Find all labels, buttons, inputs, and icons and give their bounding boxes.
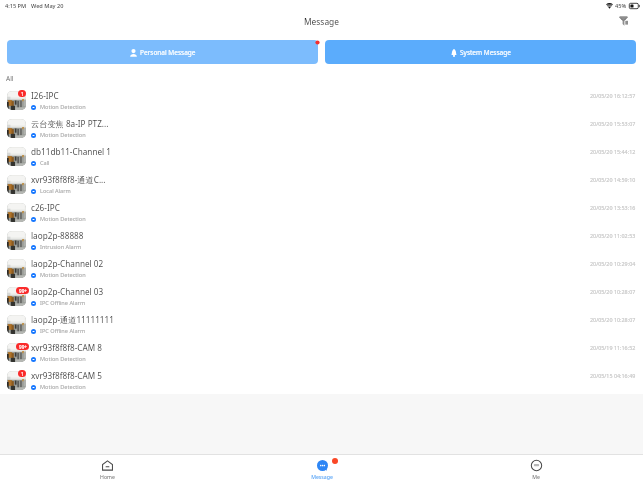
staticText: All: [6, 74, 14, 83]
staticText: Motion Detection: [40, 103, 86, 111]
button[interactable]: Home: [0, 455, 215, 482]
staticText: IPC Offline Alarm: [40, 299, 86, 307]
staticText: 20/05/20 13:53:16: [590, 204, 636, 211]
staticText: c26-IPC: [31, 202, 60, 213]
staticText: Wed May 20: [31, 2, 64, 10]
staticText: Me: [532, 473, 540, 480]
staticText: laop2p-Channel 02: [31, 258, 104, 269]
button[interactable]: Message: [215, 455, 429, 482]
staticText: Motion Detection: [40, 215, 86, 223]
staticText: 45%: [615, 2, 627, 10]
button[interactable]: laop2p-Channel 02: [0, 254, 643, 282]
staticText: laop2p-通道11111111: [31, 314, 114, 325]
staticText: 20/05/20 11:02:53: [590, 232, 636, 239]
staticText: Home: [100, 473, 115, 480]
button[interactable]: Personal Message: [7, 40, 318, 64]
button[interactable]: 1: [0, 86, 643, 114]
button[interactable]: c26-IPC: [0, 198, 643, 226]
staticText: System Message: [460, 48, 511, 57]
button[interactable]: 99+: [0, 282, 643, 310]
staticText: Motion Detection: [40, 383, 86, 391]
button[interactable]: Filter: [616, 14, 630, 28]
staticText: IPC Offline Alarm: [40, 327, 86, 335]
staticText: 20/05/20 10:28:07: [590, 316, 636, 323]
staticText: 20/05/20 16:12:57: [590, 92, 636, 99]
staticText: xvr93f8f8f8-CAM 8: [31, 342, 103, 353]
staticText: 20/05/15 04:16:49: [590, 372, 636, 379]
staticText: Motion Detection: [40, 131, 86, 139]
staticText: 20/05/20 10:29:04: [590, 260, 636, 267]
staticText: 99+: [19, 288, 27, 294]
staticText: 云台变焦 8a-IP PTZ...: [31, 118, 109, 129]
button[interactable]: 1: [0, 366, 643, 394]
button[interactable]: 99+: [0, 338, 643, 366]
staticText: 1: [21, 371, 24, 377]
staticText: laop2p-88888: [31, 230, 84, 241]
staticText: Message: [311, 473, 333, 480]
button[interactable]: 云台变焦 8a-IP PTZ...: [0, 114, 643, 142]
staticText: 20/05/20 15:53:07: [590, 120, 636, 127]
staticText: 20/05/20 14:59:10: [590, 176, 636, 183]
staticText: 4:15 PM: [5, 2, 27, 10]
staticText: 20/05/19 11:16:52: [590, 344, 636, 351]
button[interactable]: db11db11-Channel 1: [0, 142, 643, 170]
button[interactable]: laop2p-88888: [0, 226, 643, 254]
staticText: Call: [40, 159, 50, 167]
staticText: Message: [304, 16, 339, 27]
button[interactable]: xvr93f8f8f8-通道C...: [0, 170, 643, 198]
staticText: Motion Detection: [40, 271, 86, 279]
staticText: 20/05/20 10:28:07: [590, 288, 636, 295]
button[interactable]: laop2p-通道11111111: [0, 310, 643, 338]
staticText: db11db11-Channel 1: [31, 146, 112, 157]
staticText: xvr93f8f8f8-CAM 5: [31, 370, 103, 381]
button[interactable]: System Message: [325, 40, 636, 64]
staticText: Local Alarm: [40, 187, 71, 195]
staticText: Personal Message: [140, 48, 196, 57]
staticText: I26-IPC: [31, 90, 59, 101]
staticText: laop2p-Channel 03: [31, 286, 104, 297]
staticText: 1: [21, 91, 24, 97]
staticText: 20/05/20 15:44:12: [590, 148, 636, 155]
button[interactable]: Me: [429, 455, 643, 482]
staticText: xvr93f8f8f8-通道C...: [31, 174, 106, 185]
staticText: Motion Detection: [40, 355, 86, 363]
staticText: Intrusion Alarm: [40, 243, 82, 251]
staticText: 99+: [19, 344, 27, 350]
